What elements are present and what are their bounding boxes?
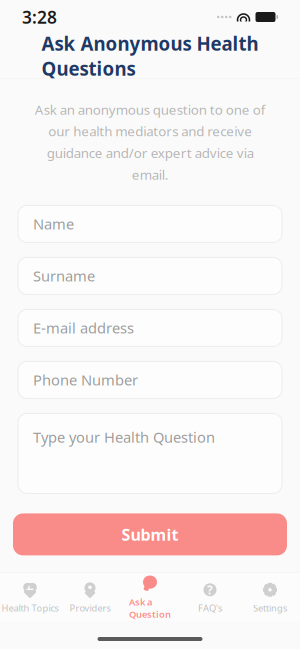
staticText: Ask an anonymous question to one of our … <box>34 101 265 183</box>
staticText: Settings <box>253 602 287 614</box>
staticText: Type your Health Question <box>33 427 215 447</box>
button[interactable]: Submit <box>13 513 287 555</box>
staticText: Surname <box>33 266 95 286</box>
staticText: E-mail address <box>33 318 134 338</box>
staticText: Ask Anonymous Health Questions <box>41 31 258 81</box>
staticText: 3:28 <box>22 5 57 28</box>
button[interactable]: ? <box>180 581 240 615</box>
button[interactable]: Health Topics <box>0 581 60 615</box>
staticText: Phone Number <box>33 370 138 390</box>
staticText: Health Topics <box>1 602 58 614</box>
button[interactable]: Settings <box>240 581 300 615</box>
staticText: Ask a Question <box>129 596 171 620</box>
button[interactable]: Providers <box>60 581 120 615</box>
staticText: Name <box>33 214 74 234</box>
staticText: Submit <box>121 524 178 545</box>
staticText: FAQ's <box>198 602 222 614</box>
staticText: ? <box>207 582 213 598</box>
staticText: Providers <box>69 602 110 614</box>
button[interactable]: Ask a Question <box>120 581 180 615</box>
